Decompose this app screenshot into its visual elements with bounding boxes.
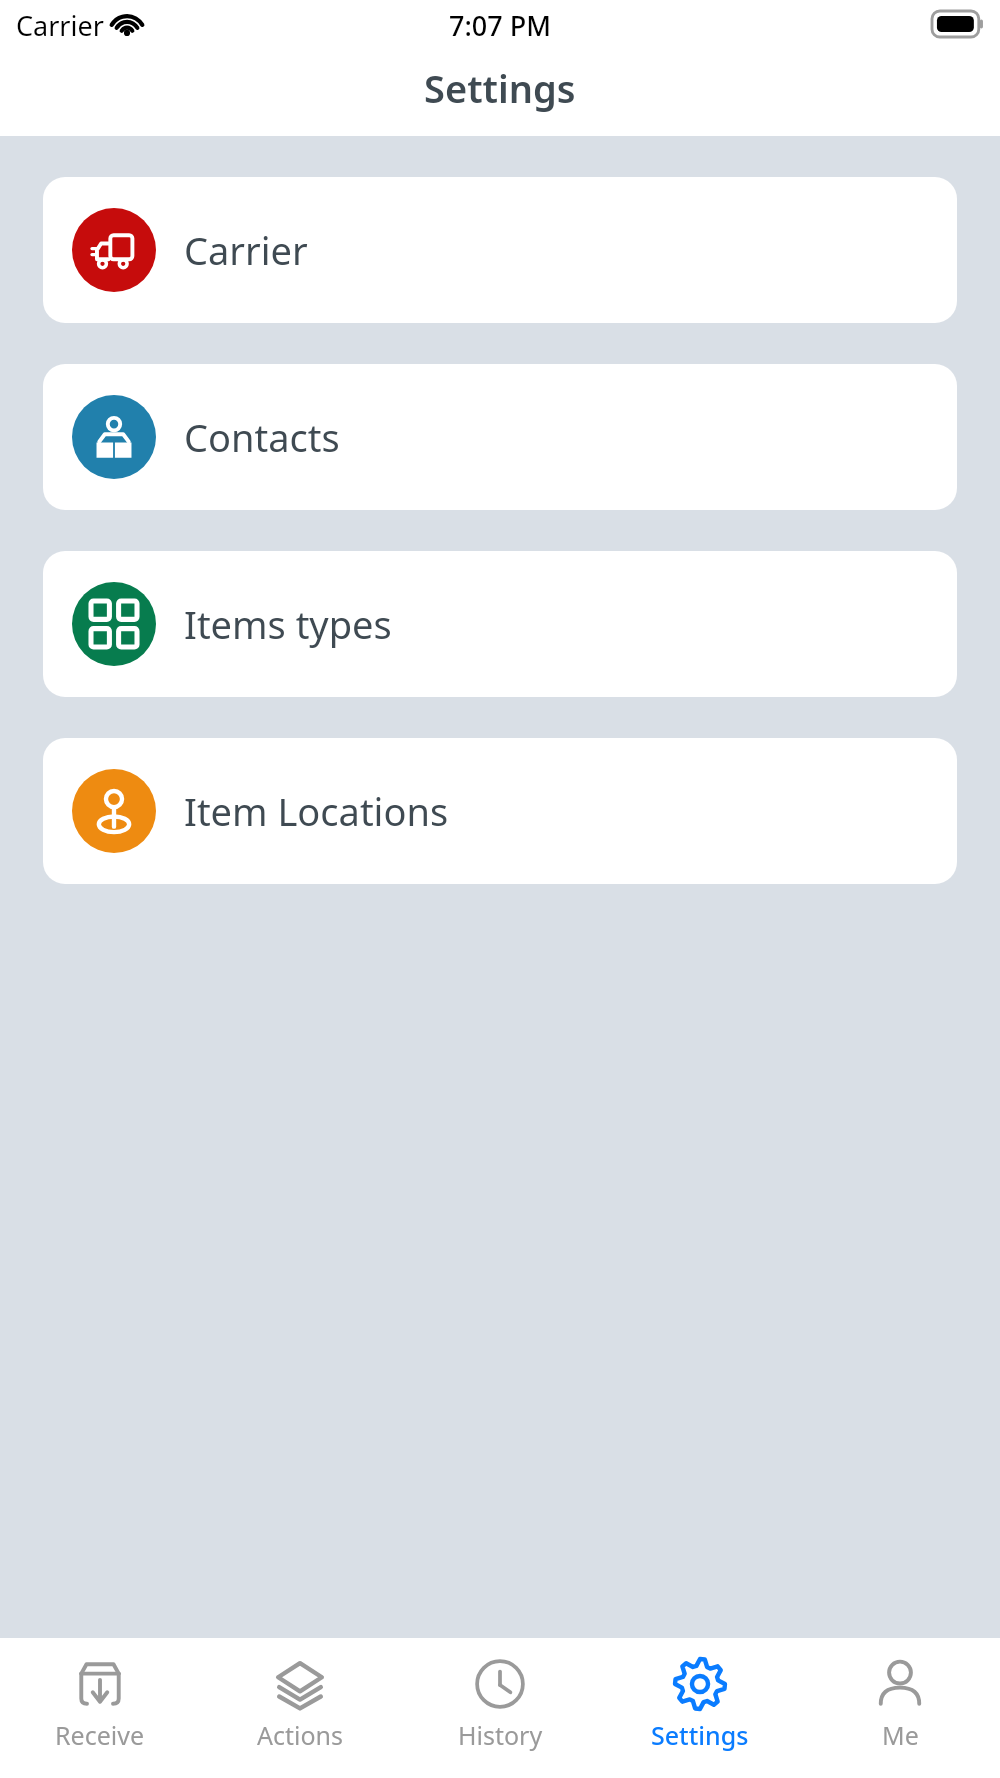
button[interactable]: Carrier: [43, 177, 957, 323]
staticText: Carrier: [184, 224, 308, 276]
button[interactable]: History: [400, 1638, 600, 1778]
button[interactable]: Receive: [0, 1638, 200, 1778]
staticText: Carrier: [16, 7, 104, 44]
staticText: Settings: [424, 62, 576, 114]
staticText: Items types: [184, 598, 392, 650]
button[interactable]: Item Locations: [43, 738, 957, 884]
staticText: Actions: [257, 1718, 344, 1752]
staticText: Settings: [651, 1718, 749, 1752]
staticText: Contacts: [184, 411, 340, 463]
staticText: Receive: [55, 1718, 145, 1752]
button[interactable]: Actions: [200, 1638, 400, 1778]
button[interactable]: Contacts: [43, 364, 957, 510]
button[interactable]: Me: [800, 1638, 1000, 1778]
button[interactable]: Items types: [43, 551, 957, 697]
other: Receive: [74, 1658, 126, 1710]
other: Actions: [274, 1658, 326, 1710]
staticText: Me: [882, 1718, 919, 1752]
staticText: 7:07 PM: [449, 7, 551, 44]
staticText: Item Locations: [184, 785, 449, 837]
other: Settings: [674, 1658, 726, 1710]
button[interactable]: Settings: [600, 1638, 800, 1778]
other: History: [474, 1658, 526, 1710]
other: Me: [874, 1658, 926, 1710]
staticText: History: [458, 1718, 543, 1752]
